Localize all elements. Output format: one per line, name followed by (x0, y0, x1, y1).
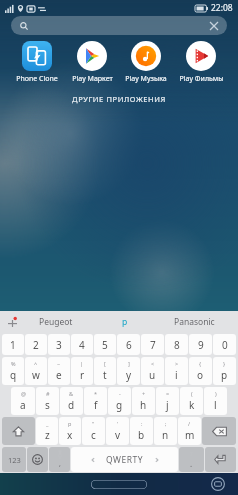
button[interactable]: 5 (94, 334, 116, 355)
staticText: f (94, 398, 98, 412)
staticText: 4 (79, 338, 85, 352)
button[interactable]: Panasonic (157, 311, 232, 333)
button[interactable]: Clear (11, 16, 227, 35)
button[interactable]: / (178, 417, 201, 445)
staticText: k (189, 398, 195, 412)
staticText: x (67, 428, 73, 442)
button[interactable]: [ (94, 357, 116, 385)
staticText: 22:08 (211, 2, 233, 14)
button[interactable]: Voice input (49, 447, 70, 472)
button[interactable]: - (108, 387, 131, 415)
staticText: e (56, 368, 62, 382)
button[interactable]: Enter (205, 447, 236, 472)
button[interactable]: | (71, 357, 93, 385)
button[interactable]: Play Маркет (66, 39, 118, 86)
button[interactable]: * (84, 387, 107, 415)
staticText: r (80, 368, 85, 382)
staticText: 3 (56, 338, 62, 352)
staticText: # (46, 390, 50, 397)
staticText: Phone Clone (16, 74, 58, 84)
staticText: > (175, 360, 179, 367)
button[interactable]: + (132, 387, 155, 415)
button[interactable]: 8 (165, 334, 188, 355)
button[interactable]: Emoji (27, 447, 48, 472)
button[interactable]: ^ (25, 357, 47, 385)
staticText: - (119, 390, 121, 397)
button[interactable]: Add (4, 314, 20, 330)
staticText: v (115, 428, 121, 442)
staticText: 123 (8, 455, 21, 465)
button[interactable]: > (165, 357, 188, 385)
staticText: d (68, 398, 75, 412)
button[interactable]: % (2, 357, 24, 385)
staticText: _ (46, 420, 49, 427)
button[interactable]: { (189, 357, 212, 385)
staticText: ( (191, 390, 193, 397)
staticText: m (185, 428, 195, 442)
button[interactable]: 6 (117, 334, 140, 355)
staticText: " (92, 420, 95, 427)
staticText: Play Маркет (72, 74, 113, 84)
button[interactable]: ? (179, 447, 204, 472)
button[interactable]: Phone Clone (11, 39, 63, 86)
staticText: | (80, 360, 84, 367)
button[interactable]: Clear (207, 19, 220, 32)
button[interactable]: p (59, 417, 81, 445)
staticText: 9 (198, 338, 204, 352)
button[interactable]: Backspace (202, 417, 236, 445)
button[interactable]: ~ (48, 357, 70, 385)
button[interactable]: 1 (2, 334, 24, 355)
staticText: * (94, 390, 98, 397)
button[interactable]: 123 (2, 447, 26, 472)
staticText: 0 (222, 338, 228, 352)
staticText: QWERTY (106, 454, 144, 466)
staticText: 7 (150, 338, 156, 352)
staticText: i (175, 368, 178, 382)
button[interactable]: 0 (213, 334, 236, 355)
button[interactable]: ' (106, 417, 129, 445)
button[interactable]: 7 (141, 334, 164, 355)
button[interactable]: QWERTY (71, 447, 178, 472)
button[interactable]: # (36, 387, 59, 415)
button[interactable]: Play Фильмы (175, 39, 227, 86)
button[interactable]: 9 (189, 334, 212, 355)
staticText: & (69, 390, 74, 397)
staticText: 1 (10, 338, 16, 352)
staticText: q (10, 368, 17, 382)
button[interactable]: ; (154, 417, 177, 445)
button[interactable]: & (60, 387, 83, 415)
button[interactable]: p (93, 311, 157, 333)
button[interactable]: ] (117, 357, 140, 385)
button[interactable]: Peugeot (18, 311, 93, 333)
staticText: z (45, 428, 50, 442)
button[interactable]: Hide keyboard (210, 476, 226, 492)
button[interactable]: ( (180, 387, 203, 415)
staticText: : (141, 420, 143, 427)
button[interactable]: Home (91, 480, 147, 489)
button[interactable]: 4 (71, 334, 93, 355)
button[interactable]: < (141, 357, 164, 385)
button[interactable]: Play Музыка (120, 39, 172, 86)
staticText: @ (21, 390, 26, 397)
button[interactable]: ) (204, 387, 227, 415)
button[interactable]: @ (11, 387, 35, 415)
staticText: < (151, 360, 155, 367)
button[interactable]: Shift (2, 417, 35, 445)
staticText: a (20, 398, 26, 412)
button[interactable]: : (130, 417, 153, 445)
staticText: ) (215, 390, 217, 397)
staticText: p (122, 316, 128, 328)
button[interactable]: 3 (48, 334, 70, 355)
staticText: s (45, 398, 50, 412)
button[interactable]: 2 (25, 334, 47, 355)
staticText: [ (104, 360, 106, 367)
staticText: / (188, 420, 191, 427)
staticText: { (199, 360, 202, 367)
button[interactable]: } (213, 357, 236, 385)
button[interactable]: _ (36, 417, 58, 445)
button[interactable]: = (156, 387, 179, 415)
staticText: ^ (34, 360, 38, 367)
button[interactable]: " (82, 417, 105, 445)
staticText: y (126, 368, 132, 382)
